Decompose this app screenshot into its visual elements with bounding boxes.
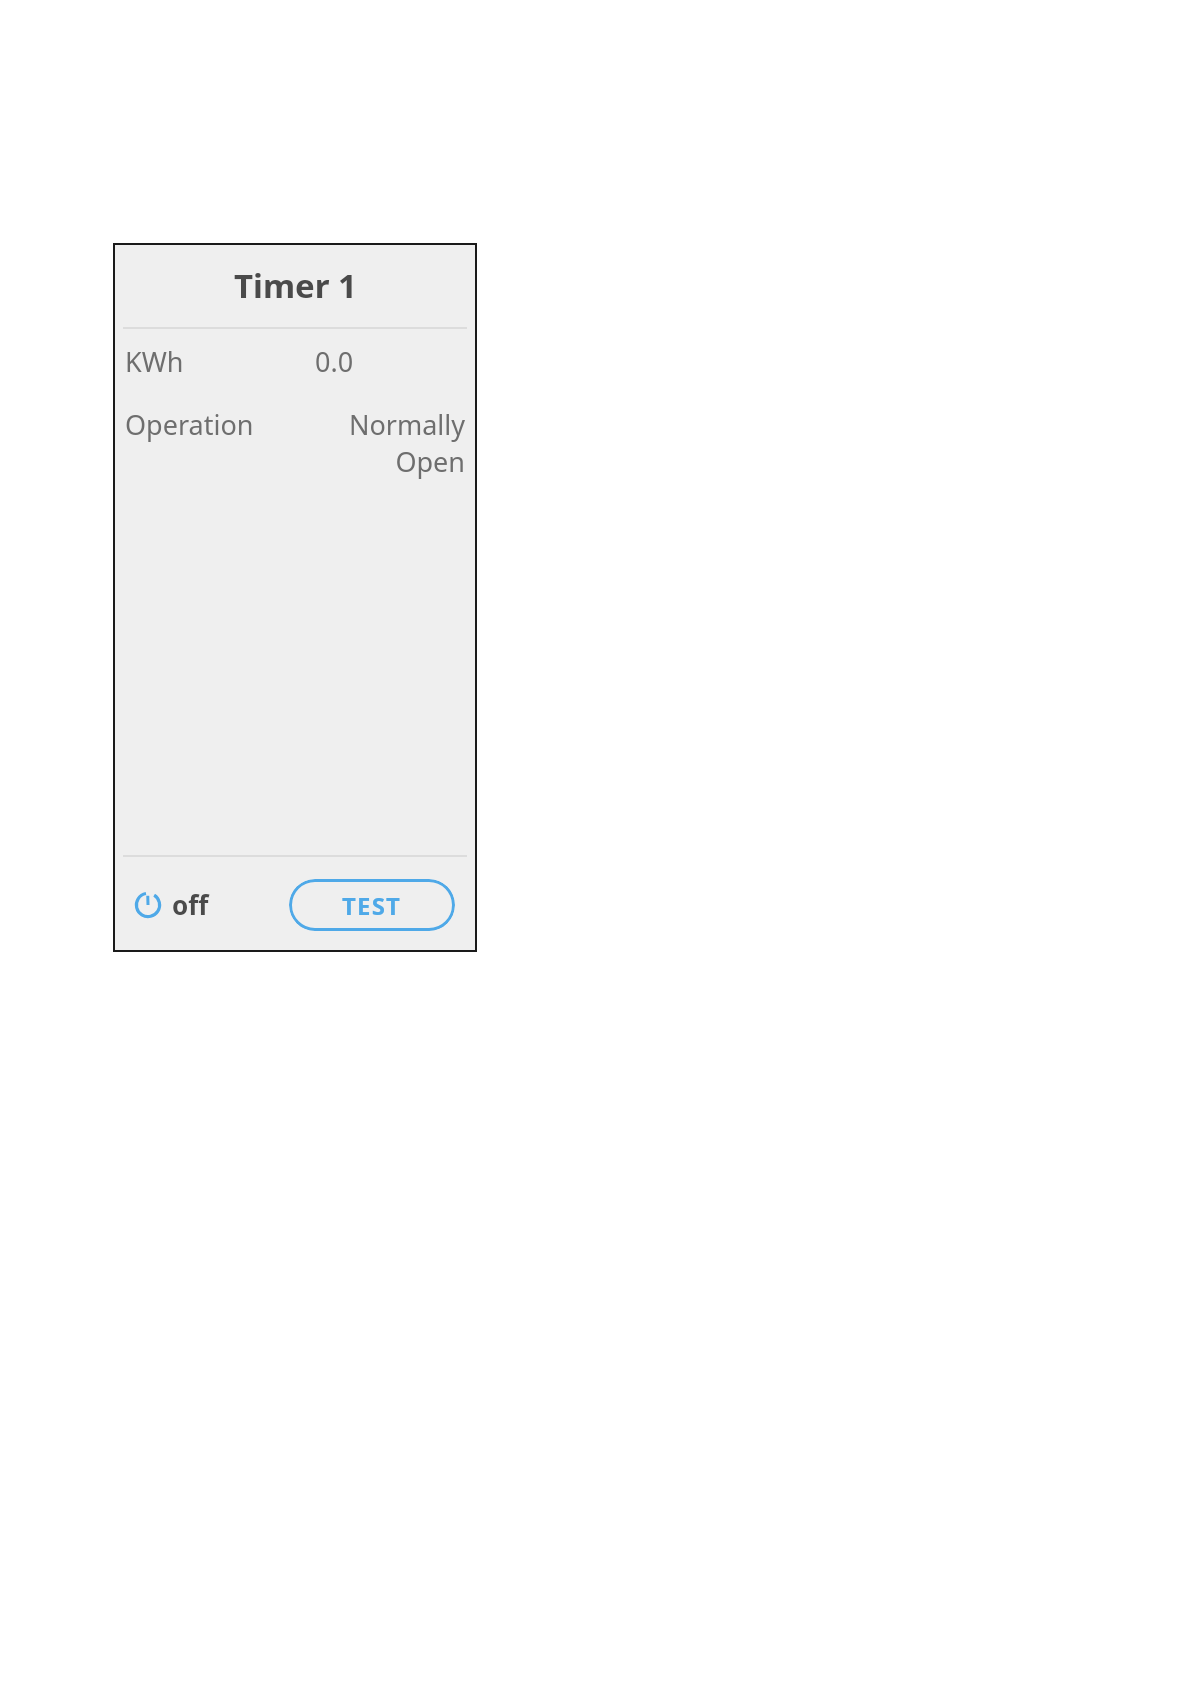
- staticText: KWh: [125, 343, 315, 380]
- staticText: TEST: [342, 889, 402, 922]
- staticText: Normally Open: [315, 406, 465, 480]
- staticText: off: [172, 887, 209, 922]
- staticText: Timer 1: [234, 263, 357, 308]
- other: Timer off: [133, 890, 163, 920]
- staticText: 0.0: [315, 343, 465, 380]
- button[interactable]: Operation: [125, 406, 465, 480]
- staticText: Operation: [125, 406, 315, 443]
- button[interactable]: KWh: [125, 343, 465, 380]
- button[interactable]: Timer off: [127, 881, 215, 928]
- button[interactable]: TEST: [289, 879, 455, 931]
